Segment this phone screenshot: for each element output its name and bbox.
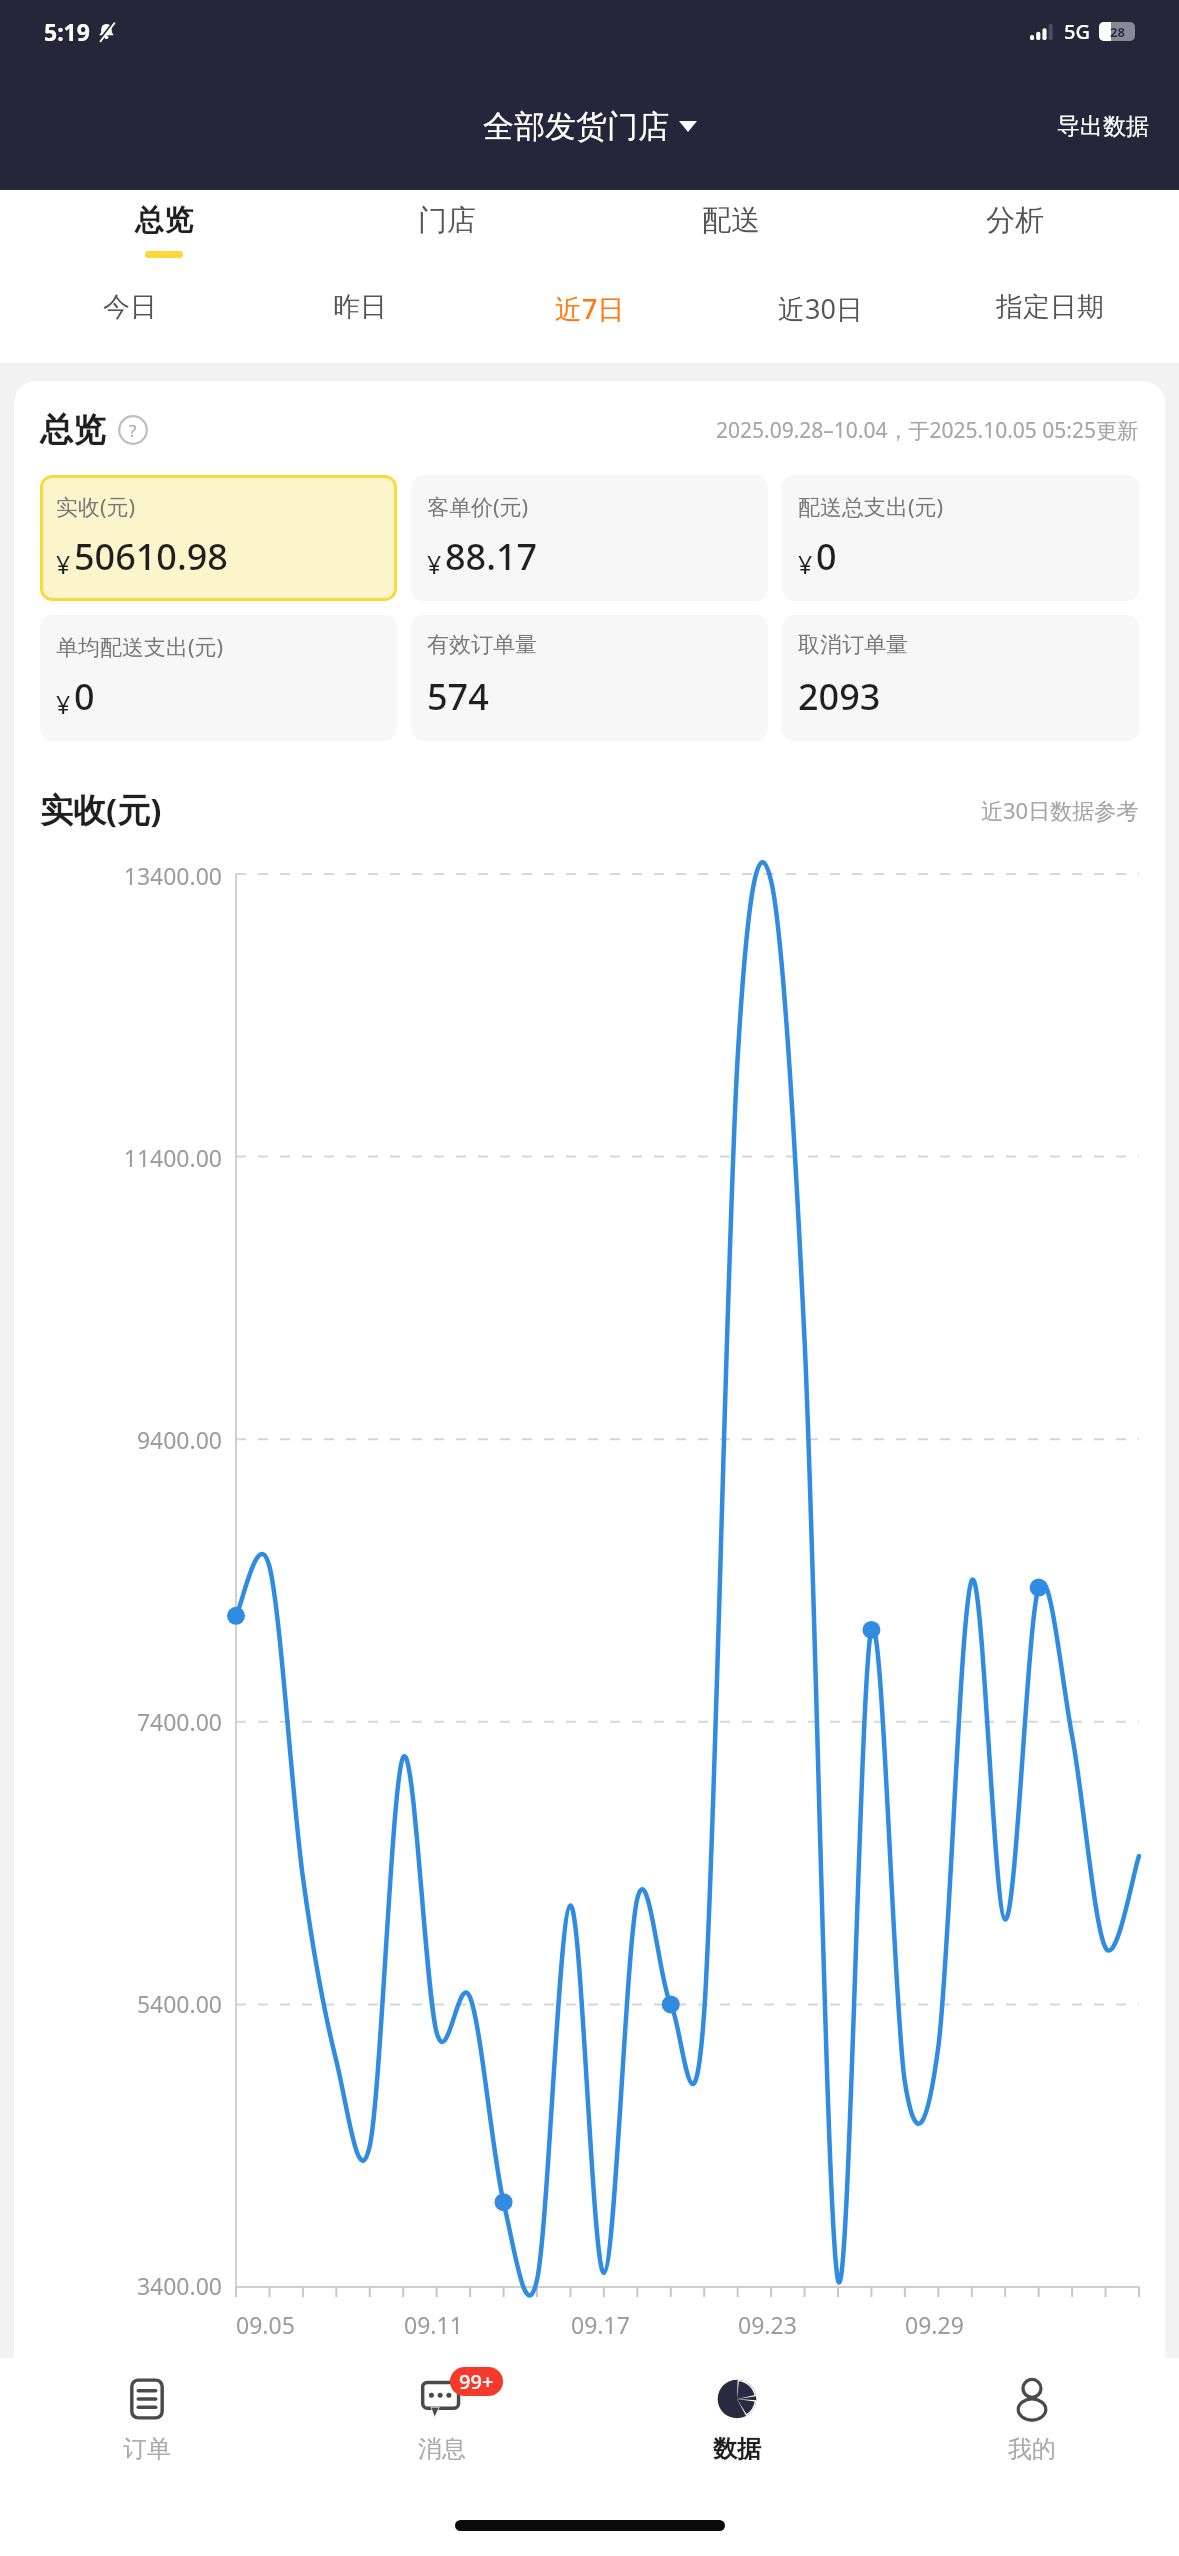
- staticText: 近30日数据参考: [981, 795, 1139, 825]
- staticText: 09.29: [905, 2309, 964, 2340]
- staticText: 574: [427, 672, 489, 721]
- button[interactable]: 昨日: [245, 284, 475, 330]
- staticText: 实收(元): [56, 491, 136, 521]
- staticText: 5:19: [44, 16, 90, 47]
- button[interactable]: 分析: [873, 202, 1157, 258]
- button[interactable]: 近7日: [475, 284, 705, 333]
- button[interactable]: 近30日: [705, 284, 935, 333]
- staticText: 昨日: [333, 290, 387, 324]
- staticText: ¥: [798, 547, 813, 581]
- staticText: 09.05: [236, 2309, 295, 2340]
- staticText: 单均配送支出(元): [56, 631, 224, 661]
- staticText: 近30日: [778, 290, 863, 327]
- staticText: ¥: [56, 687, 71, 721]
- staticText: 客单价(元): [427, 491, 529, 521]
- staticText: 5400.00: [136, 1988, 222, 2019]
- staticText: 门店: [418, 202, 476, 239]
- staticText: 2093: [798, 672, 881, 721]
- button[interactable]: 导出数据: [1027, 98, 1179, 155]
- staticText: 3400.00: [136, 2270, 222, 2301]
- staticText: 分析: [986, 202, 1044, 239]
- staticText: 订单: [123, 2434, 171, 2464]
- staticText: 0: [816, 532, 837, 581]
- button[interactable]: 实收(元): [40, 475, 397, 601]
- button[interactable]: 数据: [589, 2358, 884, 2516]
- staticText: 99+: [459, 2368, 494, 2395]
- staticText: 9400.00: [136, 1424, 222, 1455]
- staticText: 指定日期: [996, 290, 1104, 324]
- staticText: ¥: [56, 547, 71, 581]
- staticText: 总览: [40, 409, 106, 451]
- staticText: 近7日: [555, 290, 625, 327]
- staticText: 09.11: [404, 2309, 463, 2340]
- button[interactable]: 配送: [589, 202, 873, 258]
- staticText: 09.17: [571, 2309, 630, 2340]
- staticText: 我的: [1008, 2434, 1056, 2464]
- button[interactable]: 客单价(元): [411, 475, 768, 601]
- staticText: 实收(元): [40, 787, 162, 832]
- button[interactable]: 订单: [0, 2358, 294, 2516]
- button[interactable]: 有效订单量: [411, 615, 768, 741]
- staticText: 13400.00: [123, 860, 222, 891]
- button[interactable]: 今日: [14, 284, 245, 330]
- button[interactable]: 取消订单量: [782, 615, 1139, 741]
- button[interactable]: 单均配送支出(元): [40, 615, 397, 741]
- staticText: 取消订单量: [798, 631, 908, 659]
- staticText: 28: [1110, 23, 1125, 41]
- button[interactable]: 门店: [305, 202, 589, 258]
- staticText: 有效订单量: [427, 631, 537, 659]
- staticText: 7400.00: [136, 1706, 222, 1737]
- button[interactable]: 指定日期: [935, 284, 1165, 330]
- staticText: ?: [129, 419, 137, 442]
- staticText: 88.17: [445, 532, 538, 581]
- staticText: 配送总支出(元): [798, 491, 944, 521]
- staticText: 0: [74, 672, 95, 721]
- staticText: ¥: [427, 547, 442, 581]
- staticText: 数据: [713, 2434, 761, 2464]
- staticText: 2025.09.28–10.04，于2025.10.05 05:25更新: [716, 416, 1139, 445]
- staticText: 09.23: [738, 2309, 797, 2340]
- staticText: 消息: [418, 2434, 466, 2464]
- staticText: 5G: [1064, 18, 1090, 45]
- staticText: 今日: [103, 290, 157, 324]
- staticText: 50610.98: [74, 532, 228, 581]
- button[interactable]: 全部发货门店: [475, 101, 705, 152]
- staticText: 导出数据: [1057, 112, 1149, 141]
- staticText: 全部发货门店: [483, 107, 669, 146]
- button[interactable]: 我的: [884, 2358, 1179, 2516]
- button[interactable]: 总览: [22, 202, 305, 258]
- staticText: 配送: [702, 202, 760, 239]
- staticText: 11400.00: [123, 1142, 222, 1173]
- button[interactable]: 配送总支出(元): [782, 475, 1139, 601]
- button[interactable]: 99+: [294, 2358, 589, 2516]
- staticText: 总览: [135, 202, 193, 239]
- button[interactable]: 帮助: [118, 415, 148, 445]
